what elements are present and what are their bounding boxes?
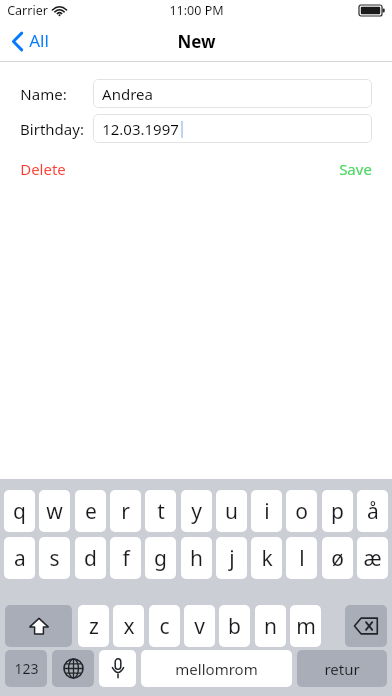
staticText: New — [177, 30, 216, 53]
staticText: Birthday: — [20, 119, 84, 139]
button[interactable]: mellomrom — [141, 650, 292, 687]
button[interactable]: å — [357, 490, 388, 532]
button[interactable]: d — [75, 537, 106, 579]
button[interactable]: Dictate — [99, 650, 136, 687]
staticText: a — [14, 544, 26, 573]
staticText: Delete — [20, 159, 66, 179]
button[interactable]: q — [4, 490, 35, 532]
staticText: p — [331, 497, 344, 526]
staticText: u — [225, 497, 238, 526]
button[interactable]: l — [286, 537, 317, 579]
staticText: 123 — [14, 659, 39, 678]
staticText: y — [191, 497, 202, 526]
button[interactable]: 12.03.1997 — [93, 114, 372, 143]
button[interactable]: Backspace — [345, 605, 387, 647]
staticText: g — [154, 544, 167, 573]
button[interactable]: Numbers — [5, 650, 47, 687]
staticText: n — [264, 612, 277, 641]
staticText: b — [228, 612, 241, 641]
button[interactable]: Andrea — [93, 79, 372, 108]
button[interactable]: t — [145, 490, 176, 532]
button[interactable]: k — [251, 537, 282, 579]
staticText: æ — [363, 544, 382, 573]
button[interactable]: æ — [357, 537, 388, 579]
staticText: 11:00 PM — [169, 2, 224, 19]
button[interactable]: a — [4, 537, 35, 579]
staticText: e — [85, 497, 97, 526]
button[interactable]: h — [181, 537, 212, 579]
button[interactable]: ø — [322, 537, 353, 579]
staticText: Save — [339, 159, 372, 179]
staticText: All — [29, 29, 49, 52]
button[interactable]: y — [181, 490, 212, 532]
staticText: Andrea — [102, 84, 153, 104]
staticText: q — [13, 497, 26, 526]
staticText: i — [264, 497, 270, 526]
staticText: Name: — [20, 84, 67, 104]
staticText: mellomrom — [175, 659, 258, 679]
staticText: j — [229, 544, 235, 573]
button[interactable]: w — [39, 490, 70, 532]
staticText: v — [194, 612, 205, 641]
button[interactable]: o — [286, 490, 317, 532]
staticText: l — [299, 544, 305, 573]
button[interactable]: All — [0, 24, 59, 59]
button[interactable]: j — [216, 537, 247, 579]
button[interactable]: n — [255, 605, 286, 647]
staticText: h — [190, 544, 203, 573]
staticText: Carrier — [7, 2, 48, 19]
button[interactable]: Delete — [0, 157, 74, 181]
button[interactable]: v — [184, 605, 215, 647]
button[interactable]: s — [39, 537, 70, 579]
staticText: w — [46, 497, 63, 526]
button[interactable]: Change keyboard — [52, 650, 94, 687]
staticText: retur — [324, 659, 360, 679]
staticText: x — [123, 612, 135, 641]
staticText: z — [89, 612, 99, 641]
staticText: å — [367, 497, 379, 526]
button[interactable]: e — [75, 490, 106, 532]
staticText: d — [84, 544, 97, 573]
staticText: r — [121, 497, 130, 526]
staticText: ø — [331, 544, 344, 573]
staticText: s — [49, 544, 60, 573]
button[interactable]: b — [219, 605, 250, 647]
button[interactable]: i — [251, 490, 282, 532]
staticText: o — [295, 497, 308, 526]
button[interactable]: m — [290, 605, 321, 647]
staticText: m — [296, 612, 316, 641]
staticText: t — [157, 497, 165, 526]
button[interactable]: p — [322, 490, 353, 532]
button[interactable]: r — [110, 490, 141, 532]
staticText: k — [261, 544, 273, 573]
staticText: f — [122, 544, 130, 573]
staticText: c — [159, 612, 170, 641]
button[interactable]: x — [113, 605, 144, 647]
button[interactable]: c — [149, 605, 180, 647]
button[interactable]: g — [145, 537, 176, 579]
staticText: 12.03.1997 — [102, 119, 179, 139]
button[interactable]: Save — [331, 157, 392, 181]
button[interactable]: z — [78, 605, 109, 647]
button[interactable]: retur — [297, 650, 387, 687]
button[interactable]: Shift — [5, 605, 72, 647]
button[interactable]: f — [110, 537, 141, 579]
button[interactable]: u — [216, 490, 247, 532]
